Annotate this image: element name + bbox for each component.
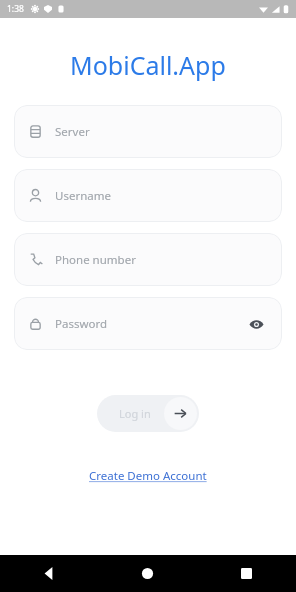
button[interactable]: Password (14, 297, 282, 350)
button[interactable]: Phone number (14, 233, 282, 286)
button[interactable]: Show password (244, 312, 268, 336)
staticText: Server (55, 124, 90, 140)
button[interactable]: Create Demo Account (83, 464, 213, 488)
button[interactable]: Log in (97, 395, 199, 432)
staticText: Phone number (55, 252, 136, 268)
staticText: Create Demo Account (89, 468, 207, 484)
staticText: 1:38 (7, 3, 24, 15)
button[interactable]: Recent apps (197, 555, 296, 592)
staticText: MobiCall.App (70, 48, 226, 82)
button[interactable]: Back (0, 555, 98, 592)
staticText: Log in (119, 406, 151, 421)
button[interactable]: Home (98, 555, 197, 592)
staticText: Password (55, 316, 108, 332)
button[interactable]: Server (14, 105, 282, 158)
staticText: Username (55, 188, 111, 204)
button[interactable]: Username (14, 169, 282, 222)
